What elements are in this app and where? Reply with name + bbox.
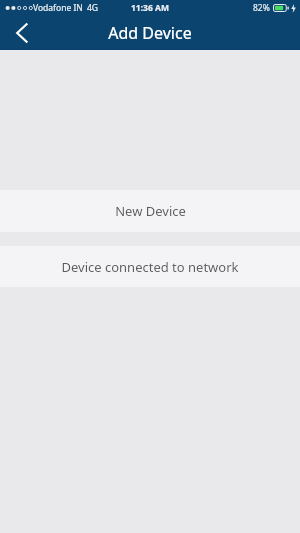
staticText: New Device: [115, 202, 186, 220]
staticText: 82%: [253, 2, 270, 14]
button[interactable]: Device connected to network: [0, 246, 300, 287]
button[interactable]: New Device: [0, 190, 300, 232]
button[interactable]: Back: [0, 16, 44, 50]
staticText: Add Device: [108, 22, 192, 44]
staticText: 4G: [87, 2, 99, 14]
staticText: Device connected to network: [61, 258, 239, 276]
staticText: 11:36 AM: [131, 2, 169, 14]
staticText: Vodafone IN: [33, 2, 83, 14]
